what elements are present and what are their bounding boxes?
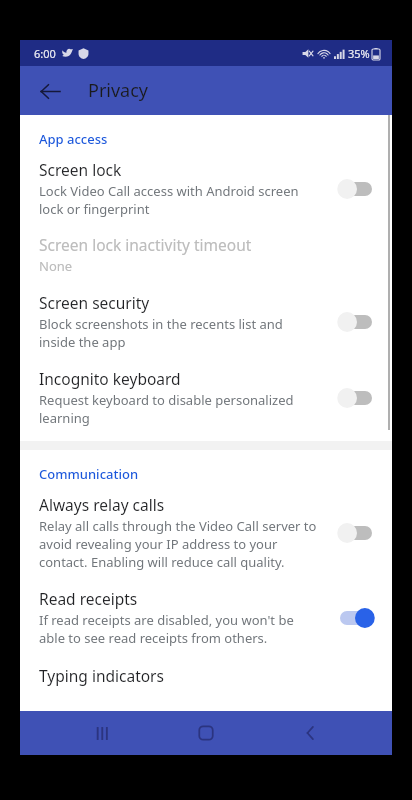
staticText: Screen lock inactivity timeout <box>39 234 252 255</box>
staticText: Privacy <box>88 78 149 103</box>
staticText: Request keyboard to disable personalized… <box>39 391 320 427</box>
button[interactable]: Screen lock <box>20 159 392 218</box>
button[interactable]: Incognito keyboard <box>20 368 392 427</box>
button[interactable]: Off <box>336 385 376 411</box>
staticText: Lock Video Call access with Android scre… <box>39 182 320 218</box>
button[interactable]: Back <box>287 711 335 755</box>
staticText: Always relay calls <box>39 494 165 515</box>
staticText: Read receipts <box>39 588 138 609</box>
button[interactable]: Typing indicators <box>20 665 392 686</box>
button[interactable]: Off <box>336 520 376 546</box>
staticText: None <box>39 257 73 275</box>
staticText: If read receipts are disabled, you won't… <box>39 611 320 647</box>
staticText: 6:00 <box>34 46 56 61</box>
staticText: Screen security <box>39 292 150 313</box>
staticText: Relay all calls through the Video Call s… <box>39 517 320 571</box>
button[interactable]: Off <box>336 176 376 202</box>
staticText: Incognito keyboard <box>39 368 181 389</box>
staticText: Communication <box>39 465 139 483</box>
button[interactable]: Home <box>182 711 230 755</box>
button[interactable]: Back <box>30 71 70 111</box>
button[interactable]: Off <box>336 309 376 335</box>
staticText: 35% <box>348 46 370 61</box>
staticText: Block screenshots in the recents list an… <box>39 315 320 351</box>
button[interactable]: On <box>336 605 376 631</box>
button[interactable]: Recents <box>77 711 125 755</box>
staticText: App access <box>39 130 108 148</box>
staticText: Screen lock <box>39 159 122 180</box>
button[interactable]: Read receipts <box>20 588 392 647</box>
staticText: Typing indicators <box>39 665 376 686</box>
button[interactable]: Screen security <box>20 292 392 351</box>
button[interactable]: Always relay calls <box>20 494 392 571</box>
